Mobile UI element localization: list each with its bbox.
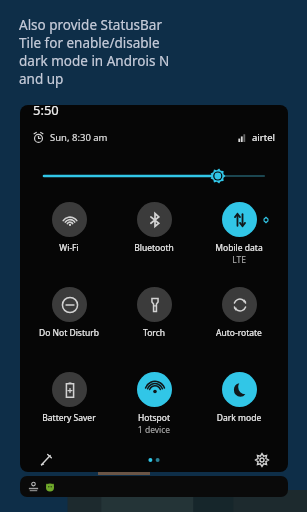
button[interactable]: Torch bbox=[112, 285, 196, 339]
staticText: Also provide StatusBar bbox=[19, 16, 162, 34]
staticText: Hotspot bbox=[112, 412, 196, 424]
staticText: Tile for enable/disable bbox=[19, 34, 160, 52]
staticText: Auto-rotate bbox=[197, 327, 281, 339]
staticText: Do Not Disturb bbox=[27, 327, 111, 339]
staticText: Bluetooth bbox=[112, 242, 196, 254]
button[interactable]: Brightness bbox=[44, 165, 264, 187]
button[interactable]: Dark mode bbox=[197, 370, 281, 424]
staticText: LTE bbox=[197, 254, 281, 266]
staticText: Sun, 8:30 am bbox=[50, 131, 108, 144]
button[interactable]: Settings bbox=[252, 450, 272, 470]
button[interactable]: Auto-rotate bbox=[197, 285, 281, 339]
staticText: Battery Saver bbox=[27, 412, 111, 424]
button[interactable]: Mobile data bbox=[197, 200, 281, 266]
button[interactable]: Edit tiles bbox=[36, 450, 56, 470]
staticText: Torch bbox=[112, 327, 196, 339]
staticText: Dark mode bbox=[197, 412, 281, 424]
button[interactable]: Wi-Fi bbox=[27, 200, 111, 254]
button[interactable]: Bluetooth bbox=[112, 200, 196, 254]
staticText: dark mode in Androis N bbox=[19, 52, 170, 70]
button[interactable] bbox=[20, 476, 288, 497]
staticText: 5:50 bbox=[33, 105, 59, 119]
staticText: and up bbox=[19, 70, 64, 88]
button[interactable]: Battery Saver bbox=[27, 370, 111, 424]
staticText: Wi-Fi bbox=[27, 242, 111, 254]
staticText: Mobile data bbox=[197, 242, 281, 254]
staticText: 1 device bbox=[112, 424, 196, 436]
staticText: airtel bbox=[252, 131, 275, 144]
button[interactable]: Hotspot bbox=[112, 370, 196, 436]
button[interactable]: Do Not Disturb bbox=[27, 285, 111, 339]
